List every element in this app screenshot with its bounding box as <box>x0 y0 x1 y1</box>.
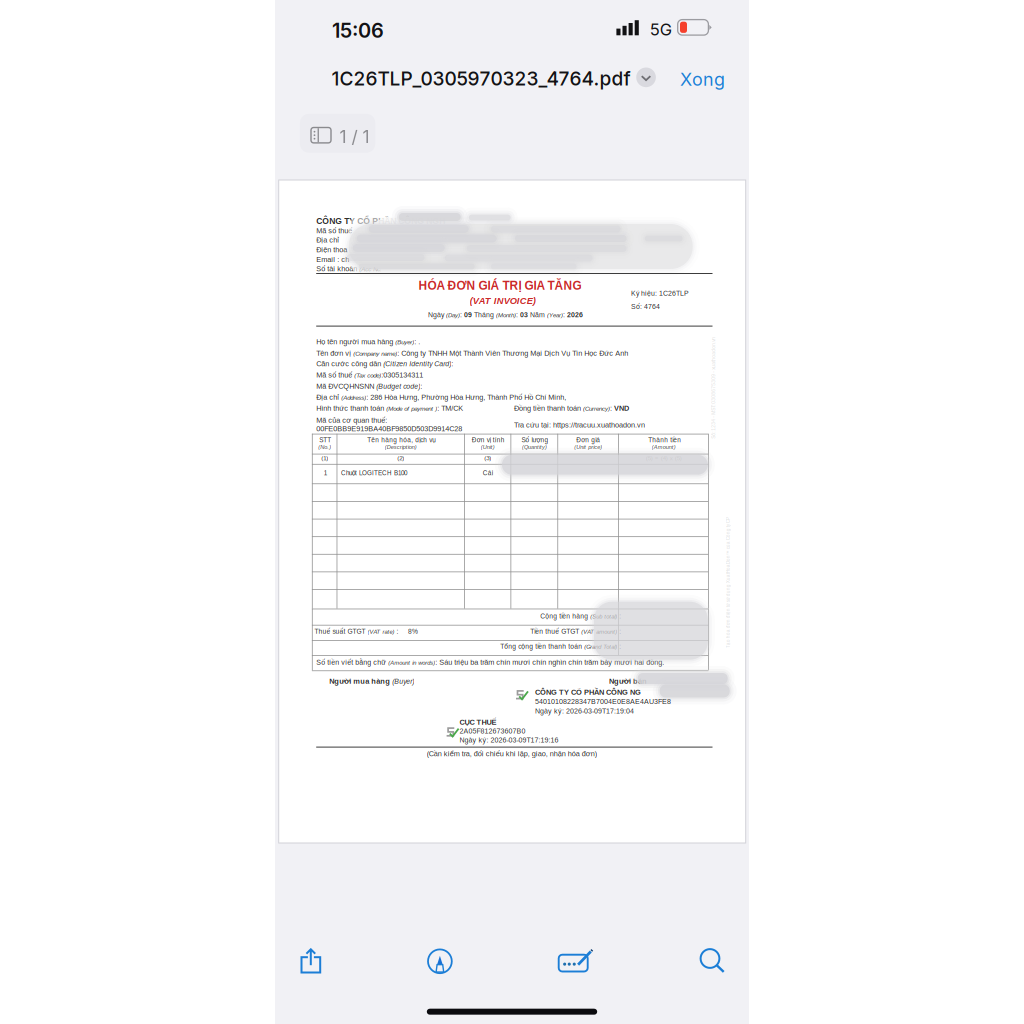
button[interactable]: Page 1 of 1 <box>300 114 375 153</box>
staticText: (3) <box>484 455 491 462</box>
staticText: Chuột LOGITECH B100 <box>341 469 407 476</box>
staticText: Tên đơn vị (Company name): Công ty TNHH … <box>316 349 628 357</box>
staticText: Mã số thuế (Tax code):0305134311 <box>316 371 423 379</box>
staticText: 1 <box>324 469 328 477</box>
staticText: CÔNG TY CỔ PHẦN CÔNG NGH <box>316 216 445 226</box>
staticText: Xong <box>680 68 725 90</box>
button[interactable]: Markup <box>410 939 470 983</box>
staticText: Tiền thuế GTGT (VAT amount) : <box>530 628 621 635</box>
staticText: Người bán <box>609 677 647 685</box>
staticText: Họ tên người mua hàng (Buyer): . <box>316 338 420 346</box>
staticText: (VAT INVOICE) <box>470 295 536 306</box>
staticText: Tên hàng hóa, dịch vụ <box>367 436 436 444</box>
staticText: 1 / 1 <box>339 126 369 147</box>
staticText: Thuế suất GTGT (VAT rate) : <box>314 628 398 635</box>
staticText: 00FE0BB9E919BA40BF9850D503D9914C28 <box>316 425 462 433</box>
staticText: 2A05F812673607B0 <box>459 727 525 735</box>
staticText: Mã số thuế <box>316 226 354 235</box>
staticText: Ngày ký: 2026-03-09T17:19:16 <box>459 736 558 744</box>
staticText: Mã ĐVCQHNSNN (Budget code): <box>316 382 422 390</box>
staticText: 1C26TLP_0305970323_4764.pdf <box>331 67 630 90</box>
staticText: STT <box>319 436 331 444</box>
staticText: (Unit price) <box>574 444 602 450</box>
staticText: (Description) <box>385 444 417 450</box>
staticText: Số lượng <box>521 436 548 444</box>
staticText: Số tài khoản (Acc No. <box>316 265 382 273</box>
staticText: Ngày ký: 2026-03-09T17:19:04 <box>535 707 634 715</box>
staticText: 5G <box>650 20 672 40</box>
staticText: Ký hiệu: 1C26TLP <box>631 289 689 297</box>
button[interactable]: Xong <box>669 60 736 98</box>
staticText: 8% <box>408 628 418 635</box>
button[interactable]: Fill and sign <box>547 940 605 981</box>
staticText: Số: 1234 - MST: 0308675309 - xuathoadon.… <box>663 385 765 390</box>
staticText: (Cần kiểm tra, đối chiếu khi lập, giao, … <box>427 750 597 758</box>
button[interactable]: Share <box>281 939 340 983</box>
staticText: Tra cứu tại: https://tracuu.xuathoadon.v… <box>514 421 645 429</box>
staticText: Số tiền viết bằng chữ (Amount in words):… <box>316 658 664 666</box>
staticText: 54010108228347B7004E0E8AE4AU3FE8 <box>535 697 671 705</box>
staticText: Thành tiền <box>648 436 681 444</box>
staticText: (1) <box>321 455 328 462</box>
button[interactable]: Search <box>683 939 743 983</box>
staticText: Tổng cộng tiền thanh toán (Grand Total) … <box>500 643 621 650</box>
staticText: Tạo hóa đơn điện tử sử dụng XuatHoaDon™ … <box>663 580 794 585</box>
staticText: CỤC THUẾ <box>459 718 496 726</box>
staticText: Số: 4764 <box>631 303 660 310</box>
staticText: Mã của cơ quan thuế: <box>316 416 387 424</box>
staticText: Ngày (Day): 09 Tháng (Month): 03 Năm (Ye… <box>428 311 583 319</box>
staticText: Người mua hàng (Buyer) <box>329 677 414 685</box>
staticText: (Amount) <box>652 444 676 450</box>
staticText: Email : ch <box>316 255 349 263</box>
staticText: (Quantity) <box>522 444 547 450</box>
staticText: Căn cước công dân (Citizen Identity Card… <box>316 360 453 368</box>
staticText: Đơn giá <box>576 436 600 444</box>
staticText: Địa chỉ <box>316 236 341 244</box>
staticText: Đơn vị tính <box>472 436 505 444</box>
staticText: Địa chỉ (Address): 286 Hòa Hưng, Phường … <box>316 393 566 401</box>
staticText: Đồng tiền thanh toán (Currency): VND <box>514 404 629 412</box>
staticText: Cái <box>483 469 493 477</box>
button[interactable]: Document options <box>630 61 662 93</box>
staticText: 15:06 <box>332 18 384 42</box>
staticText: (No.) <box>318 444 331 450</box>
staticText: Cộng tiền hàng (Sub total) : <box>540 612 621 620</box>
staticText: CÔNG TY CỔ PHẦN CÔNG NG <box>535 688 641 696</box>
staticText: Điện thoa <box>316 245 347 254</box>
staticText: (2) <box>397 455 404 462</box>
staticText: Hình thức thanh toán (Mode of payment ):… <box>316 404 463 412</box>
staticText: (Unit) <box>481 444 495 450</box>
staticText: HÓA ĐƠN GIÁ TRỊ GIA TĂNG <box>418 279 581 292</box>
